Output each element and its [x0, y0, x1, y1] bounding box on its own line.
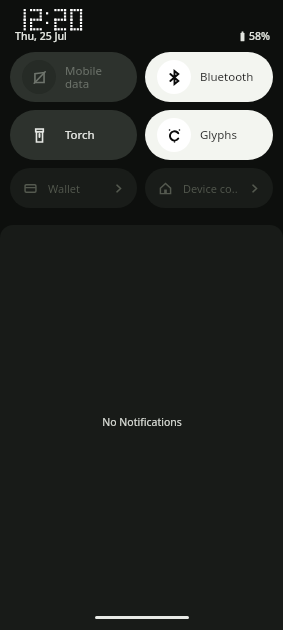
staticText: Glyphs: [200, 127, 237, 143]
button[interactable]: Mobile data: [10, 52, 137, 102]
staticText: Device co..: [183, 181, 248, 196]
staticText: Wallet: [48, 181, 112, 196]
button[interactable]: Device co..: [145, 168, 273, 208]
button[interactable]: Glyphs: [145, 110, 273, 160]
staticText: Bluetooth: [200, 69, 254, 85]
button[interactable]: Bluetooth: [145, 52, 273, 102]
button[interactable]: Wallet: [10, 168, 137, 208]
staticText: No Notifications: [102, 415, 182, 429]
staticText: 58%: [249, 29, 270, 43]
staticText: Thu, 25 Jul: [15, 29, 67, 43]
staticText: Mobile data: [65, 63, 102, 92]
staticText: Torch: [65, 127, 95, 143]
button[interactable]: Torch: [10, 110, 137, 160]
